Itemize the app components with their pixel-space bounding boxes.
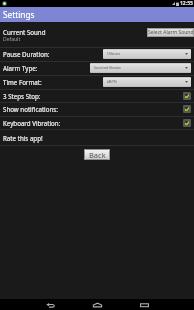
button[interactable]: Back xyxy=(84,149,110,160)
button[interactable]: Pause Duration: xyxy=(0,47,194,61)
button[interactable]: Show notifications: xyxy=(0,102,194,116)
button[interactable]: Sound and Vibration xyxy=(90,63,191,73)
button[interactable]: 3 Steps Stop: xyxy=(0,89,194,102)
staticText: Sound and Vibration xyxy=(94,66,121,70)
staticText: Default xyxy=(3,36,21,43)
button[interactable]: Keyboard Vibration: xyxy=(0,116,194,129)
staticText: AM/PM xyxy=(107,80,117,84)
button[interactable]: AM/PM xyxy=(103,77,191,87)
staticText: Rate this app! xyxy=(3,134,43,142)
staticText: Show notifications: xyxy=(3,105,58,113)
staticText: Current Sound xyxy=(3,28,46,36)
staticText: Alarm Type: xyxy=(3,64,38,72)
button[interactable]: 5 Minutes xyxy=(103,49,191,59)
button[interactable] xyxy=(183,105,191,113)
staticText: Select Alarm Sound xyxy=(148,29,194,36)
staticText: 3 Steps Stop: xyxy=(3,92,41,100)
button[interactable]: Select Alarm Sound xyxy=(147,28,194,37)
button[interactable]: Alarm Type: xyxy=(0,61,194,75)
button[interactable]: Rate this app! xyxy=(0,129,194,145)
staticText: Pause Duration: xyxy=(3,50,50,58)
button[interactable] xyxy=(183,119,191,127)
staticText: Keyboard Vibration: xyxy=(3,119,61,127)
button[interactable]: Time Format: xyxy=(0,75,194,89)
staticText: Back xyxy=(89,150,106,160)
staticText: Settings xyxy=(3,9,35,20)
button[interactable]: Current Sound xyxy=(0,22,194,47)
button[interactable]: Back xyxy=(33,299,68,310)
button[interactable]: Recent apps xyxy=(127,299,162,310)
button[interactable]: Home xyxy=(80,299,115,310)
button[interactable] xyxy=(183,92,191,100)
staticText: 5 Minutes xyxy=(107,52,120,56)
staticText: Time Format: xyxy=(3,78,42,86)
staticText: 12:55 xyxy=(180,0,193,7)
